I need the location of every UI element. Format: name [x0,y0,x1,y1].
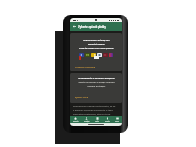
button[interactable]: Domů [70,116,81,123]
staticText: Vyberte způsob platby [78,25,106,28]
button[interactable]: Karty [102,116,112,123]
button[interactable]: Více [112,116,122,123]
staticText: Nejrychlejší způsob jak zaplatit online.… [79,39,114,50]
button[interactable]: Účty [92,116,102,123]
button[interactable]: ZJISTIT VÍCE [75,96,88,99]
button[interactable]: Platby [81,116,92,123]
button[interactable]: VSTOUPIT ONLINE [75,66,95,69]
staticText: Účty [95,120,100,122]
staticText: Karty [105,120,110,122]
button[interactable]: Nakupujete s nnovou službou? [70,73,122,103]
button[interactable]: Nejrychlejší způsob jak zaplatit online.… [70,33,122,71]
staticText: Dokončením nákupu potvrzujete, že se s p… [73,105,116,116]
staticText: Více [115,120,119,122]
staticText: Nakupujete s nnovou službou? [78,76,115,79]
staticText: Platby [84,120,90,122]
staticText: Zvolte si nákup a služby snadno nadále p… [78,81,115,88]
button[interactable]: Back [72,24,77,29]
staticText: Domů [73,120,79,122]
